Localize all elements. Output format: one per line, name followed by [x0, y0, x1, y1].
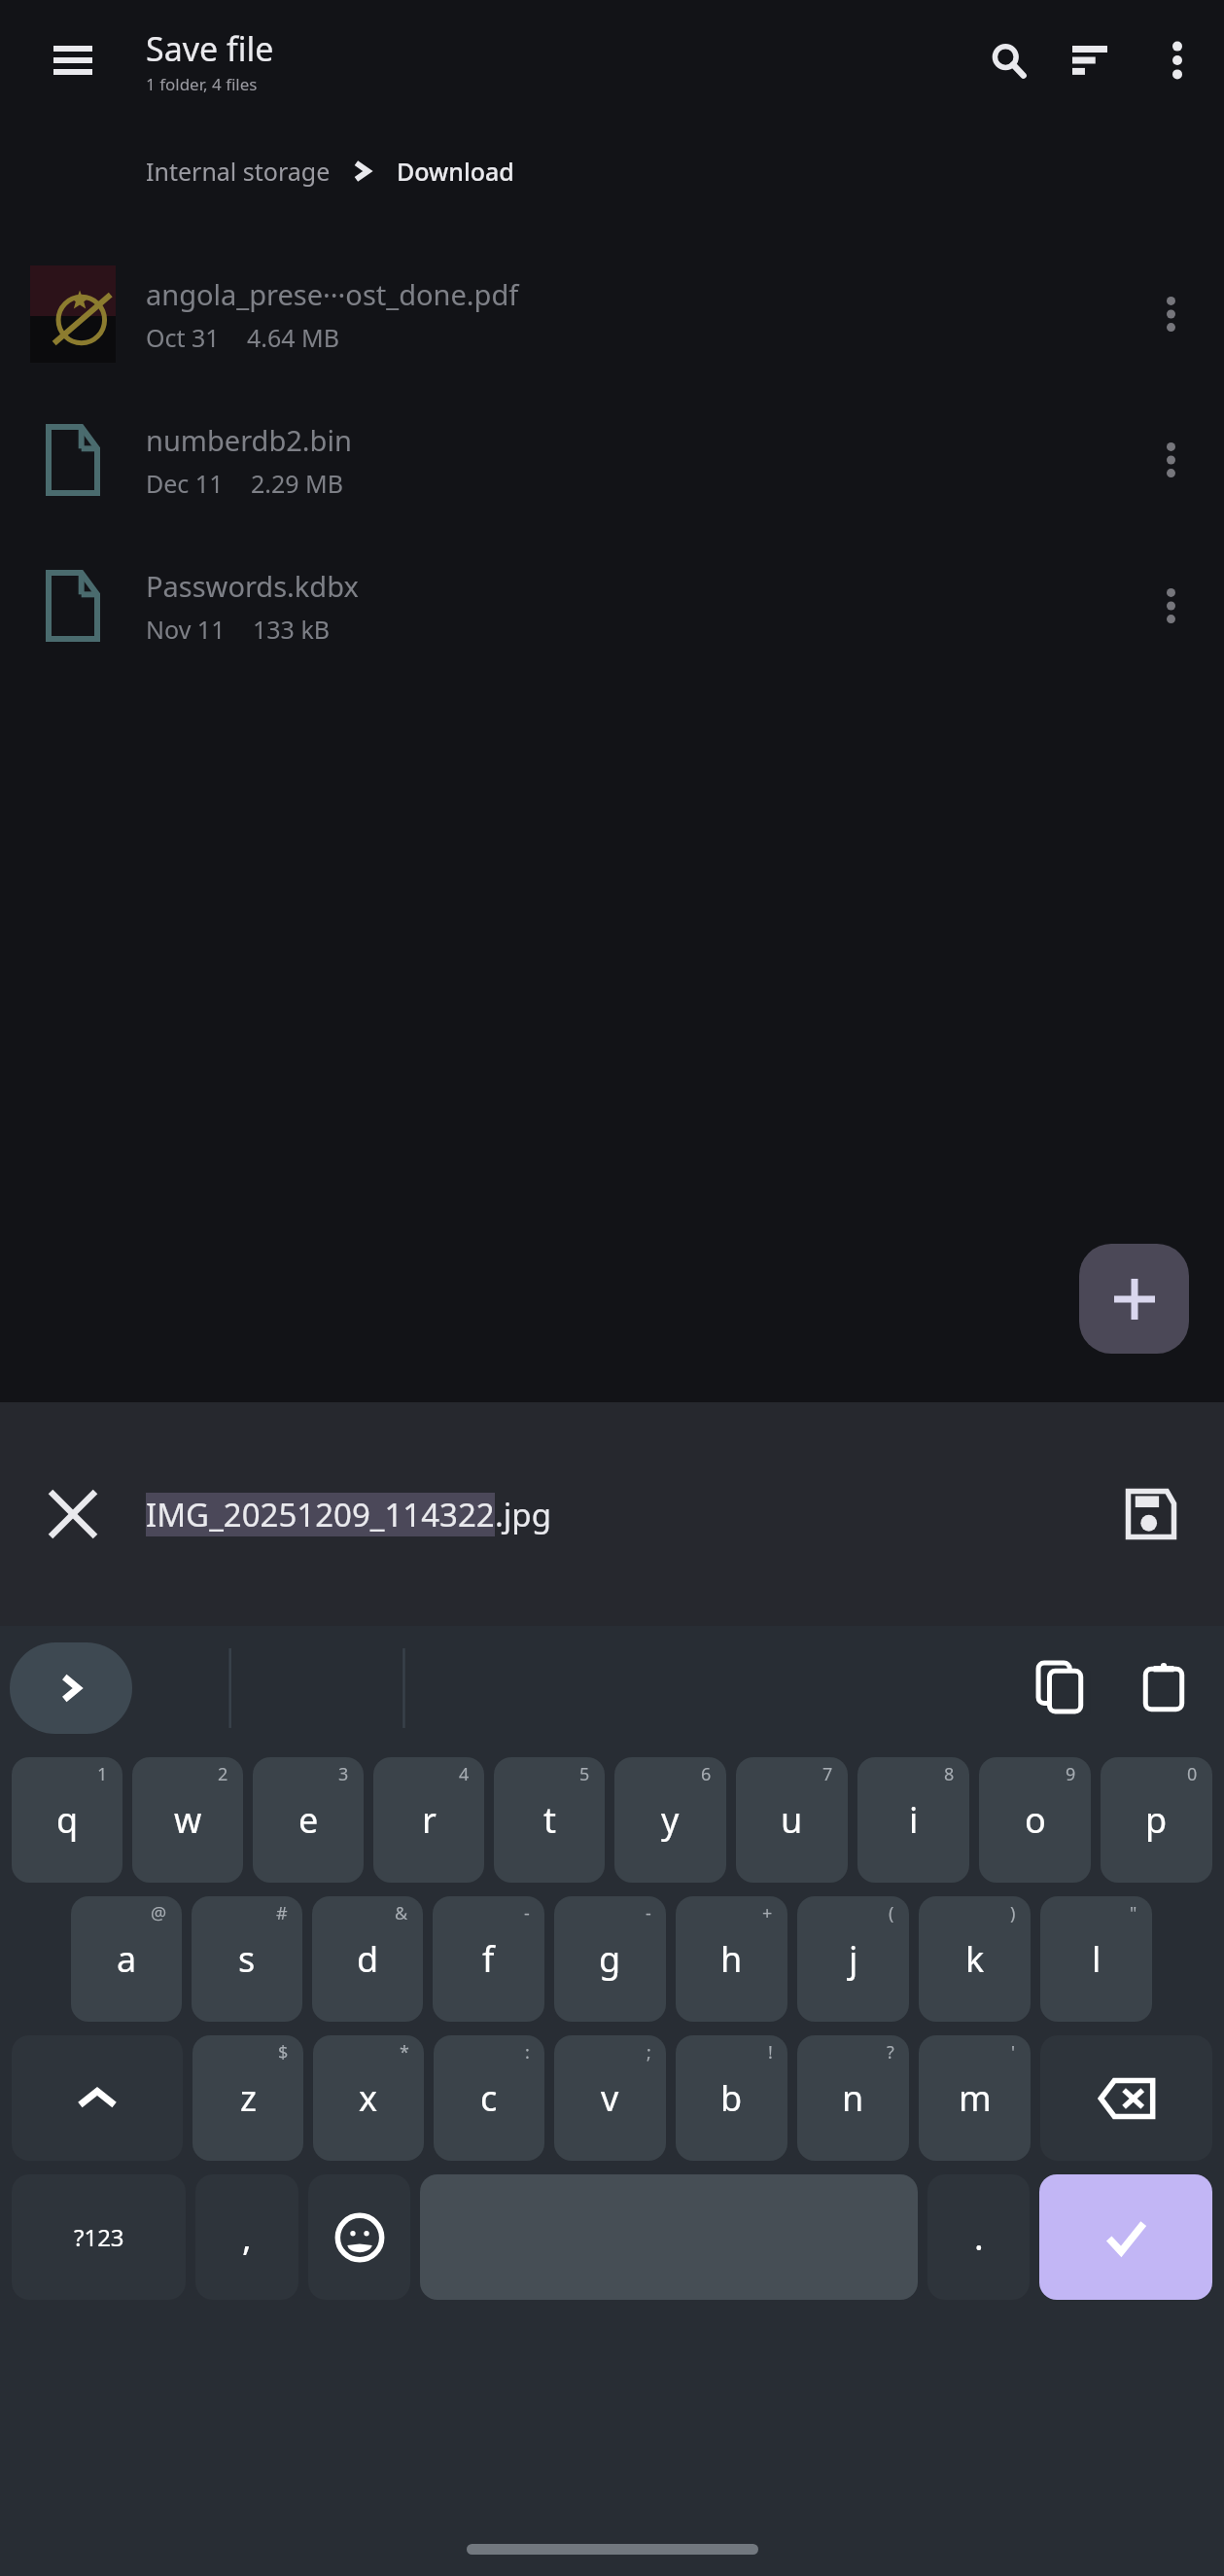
- staticText: Passwords.kdbx: [146, 567, 359, 605]
- button[interactable]: y: [614, 1757, 726, 1883]
- staticText: ": [1130, 1901, 1137, 1925]
- button[interactable]: Done: [1039, 2174, 1212, 2300]
- staticText: Internal storage: [146, 155, 331, 188]
- button[interactable]: Emoji: [308, 2174, 410, 2300]
- button[interactable]: z: [192, 2035, 303, 2161]
- button[interactable]: r: [373, 1757, 484, 1883]
- staticText: !: [768, 2040, 773, 2064]
- button[interactable]: Shift: [12, 2035, 183, 2161]
- button[interactable]: d: [312, 1896, 423, 2022]
- staticText: Oct 31: [146, 321, 220, 354]
- button[interactable]: Download: [397, 155, 514, 188]
- button[interactable]: o: [979, 1757, 1091, 1883]
- staticText: n: [842, 2074, 864, 2122]
- button[interactable]: Backspace: [1040, 2035, 1212, 2161]
- button[interactable]: ?123: [12, 2174, 186, 2300]
- button[interactable]: Save: [1078, 1402, 1224, 1626]
- staticText: -: [524, 1901, 530, 1925]
- button[interactable]: c: [434, 2035, 544, 2161]
- staticText: *: [400, 2040, 409, 2064]
- button[interactable]: k: [919, 1896, 1031, 2022]
- button[interactable]: a: [71, 1896, 182, 2022]
- staticText: numberdb2.bin: [146, 421, 352, 459]
- button[interactable]: Sort: [1049, 0, 1131, 121]
- staticText: v: [601, 2074, 619, 2122]
- staticText: 133 kB: [253, 613, 331, 646]
- staticText: p: [1145, 1796, 1168, 1844]
- staticText: w: [174, 1796, 202, 1844]
- button[interactable]: p: [1101, 1757, 1212, 1883]
- staticText: -: [646, 1901, 651, 1925]
- button[interactable]: m: [919, 2035, 1031, 2161]
- button[interactable]: l: [1040, 1896, 1152, 2022]
- staticText: ': [1011, 2040, 1016, 2064]
- staticText: d: [357, 1935, 379, 1983]
- button[interactable]: q: [12, 1757, 122, 1883]
- button[interactable]: Search: [967, 0, 1049, 121]
- staticText: k: [965, 1935, 985, 1983]
- staticText: :: [525, 2040, 530, 2064]
- button[interactable]: t: [494, 1757, 605, 1883]
- staticText: j: [849, 1935, 858, 1983]
- button[interactable]: e: [253, 1757, 364, 1883]
- staticText: Download: [397, 155, 514, 188]
- staticText: .jpg: [495, 1493, 551, 1536]
- button[interactable]: j: [797, 1896, 909, 2022]
- staticText: m: [959, 2074, 992, 2122]
- button[interactable]: Space: [420, 2174, 918, 2300]
- staticText: ;: [647, 2040, 651, 2064]
- button[interactable]: .: [927, 2174, 1030, 2300]
- staticText: 4: [459, 1762, 470, 1786]
- button[interactable]: Internal storage: [146, 155, 331, 188]
- staticText: y: [661, 1796, 680, 1844]
- staticText: 2.29 MB: [251, 467, 344, 500]
- staticText: Save file: [146, 26, 274, 71]
- button[interactable]: File options: [1117, 241, 1224, 387]
- staticText: h: [720, 1935, 743, 1983]
- button[interactable]: f: [433, 1896, 544, 2022]
- button[interactable]: g: [554, 1896, 666, 2022]
- staticText: Dec 11: [146, 467, 224, 500]
- staticText: #: [276, 1901, 288, 1925]
- button[interactable]: File options: [1117, 387, 1224, 533]
- staticText: q: [56, 1796, 79, 1844]
- staticText: 9: [1066, 1762, 1076, 1786]
- button[interactable]: u: [736, 1757, 848, 1883]
- staticText: (: [889, 1901, 894, 1925]
- staticText: a: [117, 1935, 137, 1983]
- button[interactable]: Navigation menu: [0, 0, 146, 121]
- staticText: s: [238, 1935, 256, 1983]
- staticText: ?123: [74, 2221, 124, 2253]
- staticText: g: [599, 1935, 621, 1983]
- button[interactable]: Clear: [0, 1402, 146, 1626]
- button[interactable]: n: [797, 2035, 909, 2161]
- button[interactable]: Copy: [1012, 1638, 1113, 1739]
- staticText: x: [359, 2074, 378, 2122]
- staticText: IMG_20251209_114322: [146, 1493, 495, 1536]
- staticText: .: [974, 2213, 984, 2261]
- staticText: &: [395, 1901, 408, 1925]
- button[interactable]: angola_prese···ost_done.pdf: [0, 241, 1224, 387]
- button[interactable]: Create: [1079, 1244, 1189, 1354]
- staticText: ?: [887, 2040, 894, 2064]
- staticText: e: [298, 1796, 319, 1844]
- button[interactable]: File options: [1117, 533, 1224, 679]
- button[interactable]: s: [192, 1896, 302, 2022]
- button[interactable]: v: [554, 2035, 666, 2161]
- staticText: +: [762, 1901, 773, 1925]
- button[interactable]: Expand toolbar: [10, 1642, 132, 1734]
- staticText: 1 folder, 4 files: [146, 73, 258, 95]
- button[interactable]: More options: [1131, 0, 1224, 121]
- staticText: ,: [242, 2213, 252, 2261]
- button[interactable]: numberdb2.bin: [0, 387, 1224, 533]
- button[interactable]: Passwords.kdbx: [0, 533, 1224, 679]
- button[interactable]: h: [676, 1896, 787, 2022]
- button[interactable]: x: [313, 2035, 424, 2161]
- button[interactable]: ,: [195, 2174, 298, 2300]
- button[interactable]: b: [676, 2035, 787, 2161]
- button[interactable]: Paste: [1113, 1638, 1214, 1739]
- staticText: i: [909, 1796, 919, 1844]
- button[interactable]: w: [132, 1757, 243, 1883]
- button[interactable]: i: [857, 1757, 969, 1883]
- staticText: Nov 11: [146, 613, 226, 646]
